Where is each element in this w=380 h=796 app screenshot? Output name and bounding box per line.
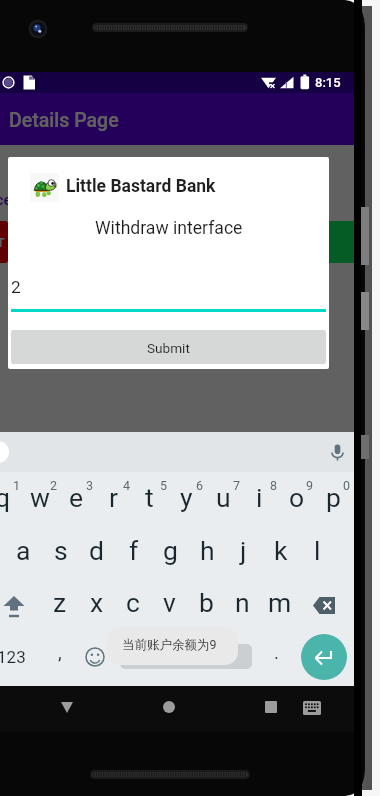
staticText: 9 bbox=[306, 478, 314, 493]
staticText: j bbox=[240, 535, 247, 566]
staticText: Withdraw interface bbox=[95, 218, 243, 239]
button[interactable]: o bbox=[278, 471, 315, 521]
button[interactable]: h bbox=[189, 524, 226, 574]
staticText: a bbox=[16, 535, 31, 566]
staticText: Current balance bbox=[0, 191, 12, 209]
staticText: 4 bbox=[123, 478, 131, 493]
staticText: y bbox=[180, 482, 193, 513]
staticText: w bbox=[30, 482, 50, 513]
button[interactable]: Enter bbox=[301, 634, 347, 680]
staticText: n bbox=[235, 587, 250, 618]
button[interactable]: , bbox=[43, 633, 77, 681]
staticText: ?123 bbox=[0, 647, 26, 667]
button[interactable]: d bbox=[78, 524, 115, 574]
staticText: 8 bbox=[270, 478, 278, 493]
staticText: r bbox=[109, 482, 118, 513]
staticText: Little Bastard Bank bbox=[66, 176, 216, 197]
button[interactable]: s bbox=[42, 524, 79, 574]
staticText: 6 bbox=[196, 478, 204, 493]
staticText: d bbox=[89, 535, 104, 566]
staticText: 2 bbox=[11, 277, 21, 297]
button[interactable]: c bbox=[114, 576, 151, 626]
button[interactable]: i bbox=[241, 471, 278, 521]
staticText: 7 bbox=[233, 478, 241, 493]
staticText: h bbox=[200, 535, 215, 566]
button[interactable]: m bbox=[261, 576, 298, 626]
staticText: 5 bbox=[160, 478, 168, 493]
staticText: t bbox=[145, 482, 154, 513]
button[interactable]: g bbox=[152, 524, 189, 574]
staticText: . bbox=[274, 641, 280, 663]
button[interactable]: p bbox=[315, 471, 352, 521]
staticText: k bbox=[274, 535, 288, 566]
button[interactable]: WITHDRAW bbox=[250, 221, 354, 263]
button[interactable]: e bbox=[58, 471, 95, 521]
button[interactable]: f bbox=[115, 524, 152, 574]
staticText: i bbox=[256, 482, 263, 513]
button[interactable]: a bbox=[5, 524, 42, 574]
staticText: q bbox=[0, 482, 11, 513]
staticText: m bbox=[268, 587, 292, 618]
button[interactable]: k bbox=[262, 524, 299, 574]
button[interactable]: Recents bbox=[251, 687, 291, 727]
button[interactable]: Voice input bbox=[320, 432, 354, 472]
button[interactable]: j bbox=[225, 524, 262, 574]
staticText: 当前账户余额为9 bbox=[122, 637, 217, 653]
staticText: 8:15 bbox=[315, 75, 341, 90]
staticText: Submit bbox=[147, 340, 190, 356]
staticText: s bbox=[54, 535, 68, 566]
staticText: 2 bbox=[50, 478, 58, 493]
staticText: Details Page bbox=[9, 109, 119, 132]
staticText: 3 bbox=[86, 478, 94, 493]
button[interactable]: Space bbox=[120, 644, 252, 669]
staticText: p bbox=[326, 482, 341, 513]
button[interactable]: Submit bbox=[11, 330, 326, 364]
button[interactable]: ?123 bbox=[0, 633, 36, 681]
staticText: DEPOSIT bbox=[0, 235, 5, 250]
button[interactable]: Home bbox=[149, 687, 189, 727]
button[interactable]: b bbox=[188, 576, 225, 626]
button[interactable]: Backspace bbox=[304, 581, 346, 629]
button[interactable]: DEPOSIT bbox=[0, 221, 8, 263]
staticText: u bbox=[216, 482, 231, 513]
staticText: l bbox=[314, 535, 321, 566]
staticText: g bbox=[163, 535, 178, 566]
button[interactable]: x bbox=[78, 576, 115, 626]
button[interactable]: Back bbox=[47, 687, 87, 727]
button[interactable]: w bbox=[21, 471, 58, 521]
staticText: c bbox=[126, 587, 140, 618]
button[interactable]: t bbox=[131, 471, 168, 521]
staticText: b bbox=[199, 587, 214, 618]
staticText: , bbox=[58, 641, 62, 663]
button[interactable]: n bbox=[224, 576, 261, 626]
button[interactable]: z bbox=[41, 576, 78, 626]
staticText: x bbox=[90, 587, 104, 618]
button[interactable]: v bbox=[151, 576, 188, 626]
staticText: e bbox=[69, 482, 84, 513]
button[interactable]: . bbox=[260, 633, 294, 681]
button[interactable]: r bbox=[95, 471, 132, 521]
button[interactable]: y bbox=[168, 471, 205, 521]
staticText: o bbox=[289, 482, 305, 513]
staticText: z bbox=[53, 587, 67, 618]
button[interactable]: Shift bbox=[0, 582, 33, 630]
button[interactable]: q bbox=[0, 471, 21, 521]
button[interactable]: Emoji bbox=[77, 633, 113, 681]
staticText: 0 bbox=[343, 478, 351, 493]
button[interactable]: Switch keyboard bbox=[292, 688, 332, 728]
button[interactable]: u bbox=[205, 471, 242, 521]
staticText: v bbox=[163, 587, 176, 618]
button[interactable]: l bbox=[299, 524, 336, 574]
staticText: f bbox=[129, 535, 139, 566]
staticText: 1 bbox=[13, 478, 21, 493]
